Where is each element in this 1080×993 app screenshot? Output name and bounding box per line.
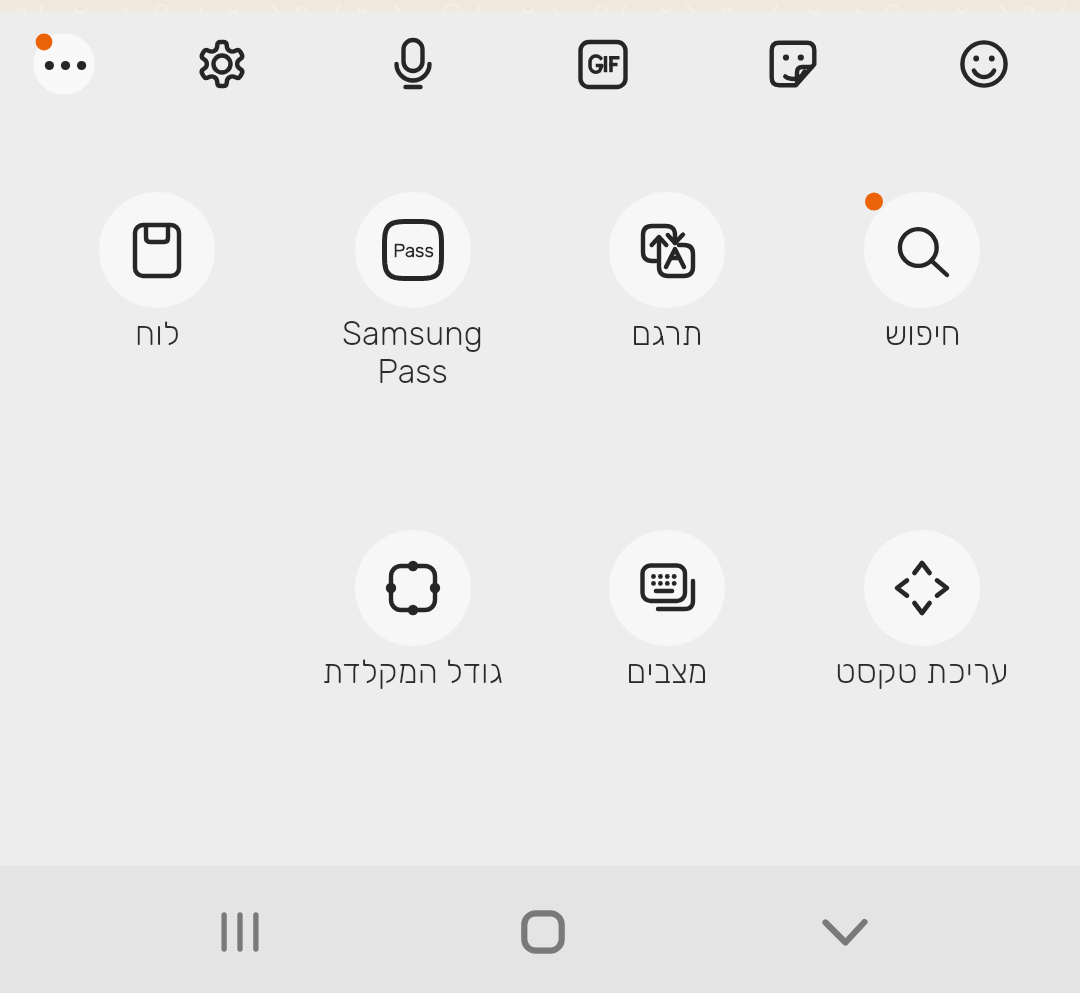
staticText: עריכת טקסט xyxy=(835,652,1009,691)
button[interactable]: Stickers xyxy=(737,8,849,120)
button[interactable]: GIF xyxy=(547,8,659,120)
button[interactable]: Voice input xyxy=(357,8,469,120)
staticText: Samsung Pass xyxy=(342,314,483,391)
button[interactable]: Settings xyxy=(166,8,278,120)
button[interactable]: גודל המקלדת xyxy=(284,518,540,738)
staticText: גודל המקלדת xyxy=(322,652,503,691)
staticText: Pass xyxy=(393,239,434,262)
staticText: מצבים xyxy=(626,652,708,691)
staticText: חיפוש xyxy=(884,314,961,353)
button[interactable]: Emoji xyxy=(928,8,1040,120)
button[interactable]: Recent apps xyxy=(180,872,300,992)
button[interactable]: חיפוש xyxy=(794,180,1050,400)
button[interactable]: Pass xyxy=(284,180,540,400)
button[interactable]: תרגם xyxy=(539,180,795,400)
button[interactable]: מצבים xyxy=(539,518,795,738)
staticText: תרגם xyxy=(631,314,703,353)
button[interactable]: Hide keyboard xyxy=(785,872,905,992)
button[interactable]: Home xyxy=(483,872,603,992)
button[interactable]: More options xyxy=(8,8,120,120)
button[interactable]: לוח xyxy=(29,180,285,400)
staticText: לוח xyxy=(135,314,180,353)
button[interactable]: עריכת טקסט xyxy=(794,518,1050,738)
